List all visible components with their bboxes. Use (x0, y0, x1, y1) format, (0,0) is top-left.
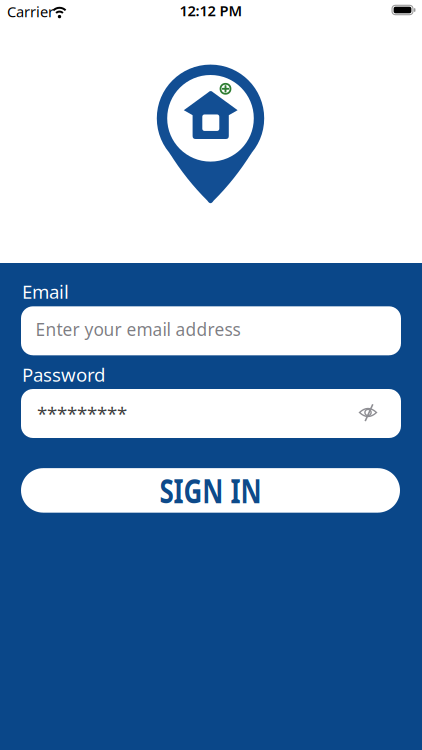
button[interactable]: SIGN IN (21, 468, 400, 513)
staticText: Carrier (7, 2, 54, 21)
staticText: Enter your email address (35, 318, 240, 341)
staticText: Password (22, 362, 105, 387)
staticText: Email (22, 279, 69, 304)
button[interactable]: Enter your email address (21, 306, 401, 355)
button[interactable] (353, 397, 383, 427)
staticText: SIGN IN (145, 468, 276, 513)
staticText: 12:12 PM (179, 1, 242, 20)
staticText: ********* (37, 401, 127, 426)
button[interactable]: ********* (21, 389, 401, 438)
